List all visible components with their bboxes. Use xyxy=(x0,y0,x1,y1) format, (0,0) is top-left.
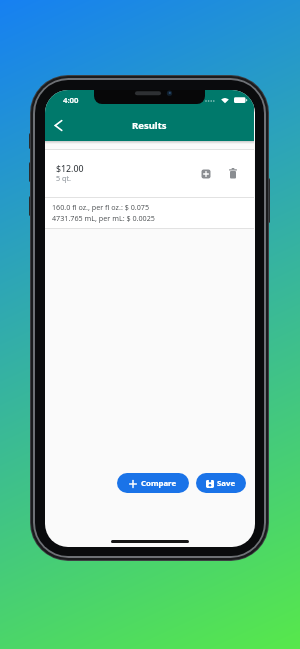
button[interactable] xyxy=(46,115,66,135)
staticText: Results xyxy=(132,119,167,132)
staticText: 4731.765 mL, per mL: $ 0.0025 xyxy=(52,213,155,223)
button[interactable] xyxy=(224,165,241,182)
button[interactable]: Save xyxy=(196,473,246,493)
button[interactable]: Compare xyxy=(117,473,189,493)
staticText: $12.00 xyxy=(56,163,84,175)
staticText: 160.0 fl oz., per fl oz.: $ 0.075 xyxy=(52,202,150,212)
staticText: 4:00 xyxy=(63,95,79,106)
staticText: 5 qt. xyxy=(56,173,71,183)
button[interactable] xyxy=(45,149,254,197)
staticText: Save xyxy=(217,478,236,489)
staticText: Compare xyxy=(141,478,177,489)
button[interactable] xyxy=(197,165,214,182)
